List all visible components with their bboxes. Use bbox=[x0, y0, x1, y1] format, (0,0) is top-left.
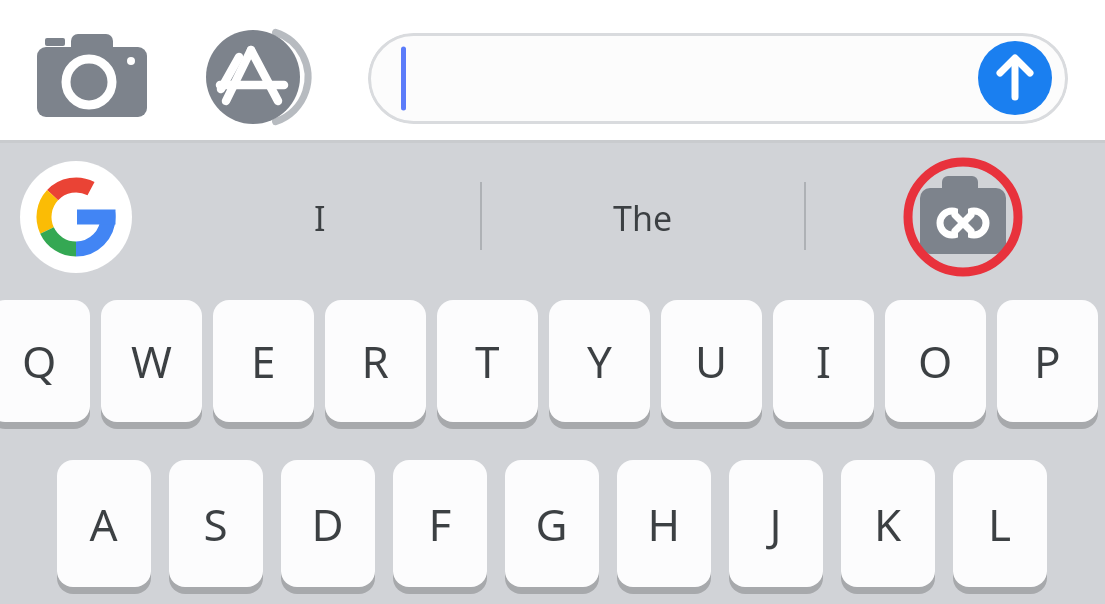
button[interactable] bbox=[482, 150, 804, 286]
button[interactable]: Camera with motion bbox=[908, 162, 1018, 272]
button[interactable]: Send bbox=[978, 41, 1052, 115]
button[interactable] bbox=[0, 300, 90, 425]
button[interactable] bbox=[169, 460, 263, 590]
button[interactable]: Google bbox=[20, 161, 132, 273]
button[interactable] bbox=[885, 300, 986, 425]
button[interactable] bbox=[57, 460, 151, 590]
button[interactable]: App Store bbox=[197, 22, 317, 134]
button[interactable] bbox=[617, 460, 711, 590]
button[interactable] bbox=[953, 460, 1047, 590]
button[interactable] bbox=[437, 300, 538, 425]
button[interactable] bbox=[160, 150, 480, 286]
button[interactable] bbox=[997, 300, 1098, 425]
button[interactable] bbox=[213, 300, 314, 425]
button[interactable] bbox=[773, 300, 874, 425]
button[interactable] bbox=[393, 460, 487, 590]
button[interactable] bbox=[101, 300, 202, 425]
button[interactable] bbox=[661, 300, 762, 425]
button[interactable] bbox=[729, 460, 823, 590]
button[interactable] bbox=[505, 460, 599, 590]
button[interactable] bbox=[368, 33, 1068, 124]
button[interactable] bbox=[281, 460, 375, 590]
button[interactable] bbox=[549, 300, 650, 425]
button[interactable] bbox=[841, 460, 935, 590]
button[interactable] bbox=[325, 300, 426, 425]
button[interactable]: Camera bbox=[32, 32, 152, 124]
